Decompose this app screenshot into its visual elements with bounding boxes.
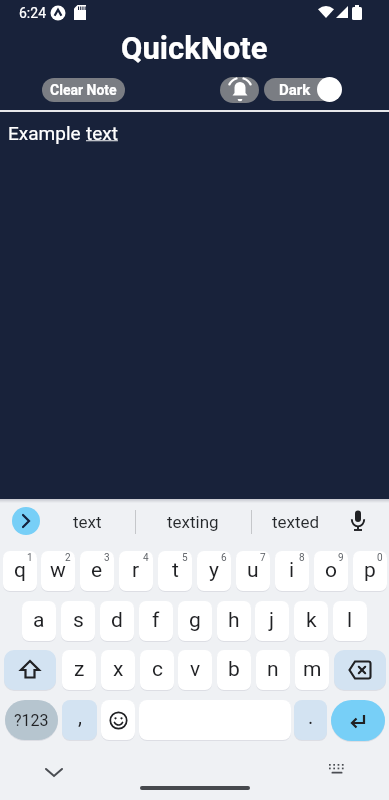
button[interactable] xyxy=(4,650,56,690)
button[interactable]: z xyxy=(62,650,96,690)
button[interactable] xyxy=(12,507,40,535)
button[interactable]: texting xyxy=(136,507,250,537)
staticText: e xyxy=(91,558,103,583)
staticText: t xyxy=(172,558,179,583)
button[interactable]: texted xyxy=(252,507,340,537)
button[interactable]: y xyxy=(197,551,231,591)
button[interactable]: x xyxy=(101,650,135,690)
staticText: q xyxy=(14,558,26,583)
staticText: 3 xyxy=(104,552,110,564)
staticText: s xyxy=(73,608,84,633)
button[interactable]: q xyxy=(3,551,37,591)
button[interactable] xyxy=(101,700,135,740)
button[interactable]: b xyxy=(217,650,251,690)
staticText: j xyxy=(269,608,275,633)
button[interactable]: j xyxy=(255,601,289,641)
staticText: y xyxy=(209,558,219,583)
staticText: 5 xyxy=(182,552,188,564)
staticText: 0 xyxy=(377,552,383,564)
staticText: texting xyxy=(167,512,219,532)
staticText: Example xyxy=(8,122,86,144)
staticText: o xyxy=(325,558,337,583)
button[interactable] xyxy=(328,763,346,776)
button[interactable] xyxy=(331,700,385,741)
button[interactable]: k xyxy=(294,601,328,641)
button[interactable]: e xyxy=(80,551,114,591)
staticText: i xyxy=(289,558,295,583)
staticText: Dark xyxy=(279,81,311,99)
button[interactable]: h xyxy=(217,601,251,641)
staticText: p xyxy=(364,558,376,583)
staticText: f xyxy=(152,608,160,633)
staticText: w xyxy=(50,558,66,583)
button[interactable]: Dark xyxy=(264,78,341,101)
button[interactable] xyxy=(334,650,386,690)
staticText: k xyxy=(306,608,317,633)
staticText: 9 xyxy=(338,552,344,564)
button[interactable]: i xyxy=(275,551,309,591)
button[interactable]: w xyxy=(41,551,75,591)
staticText: z xyxy=(74,657,85,682)
button[interactable]: t xyxy=(158,551,192,591)
staticText: , xyxy=(78,705,82,728)
staticText: l xyxy=(347,608,353,633)
button[interactable]: a xyxy=(22,601,56,641)
staticText: n xyxy=(267,657,279,682)
button[interactable]: n xyxy=(256,650,290,690)
button[interactable]: , xyxy=(62,700,97,740)
staticText: g xyxy=(189,608,201,633)
staticText: QuickNote xyxy=(121,30,268,66)
button[interactable]: text xyxy=(51,507,123,537)
staticText: v xyxy=(190,657,201,682)
button[interactable] xyxy=(44,767,64,779)
staticText: h xyxy=(228,608,240,633)
staticText: Clear Note xyxy=(50,82,117,98)
button[interactable]: r xyxy=(119,551,153,591)
staticText: u xyxy=(247,558,259,583)
button[interactable]: . xyxy=(294,700,327,740)
staticText: 6:24 xyxy=(19,5,46,21)
staticText: 2 xyxy=(65,552,71,564)
button[interactable]: o xyxy=(314,551,348,591)
button[interactable]: c xyxy=(140,650,174,690)
staticText: 7 xyxy=(260,552,266,564)
staticText: texted xyxy=(272,512,320,532)
staticText: x xyxy=(113,657,124,682)
button[interactable]: l xyxy=(333,601,367,641)
staticText: d xyxy=(111,608,123,633)
staticText: 1 xyxy=(27,552,33,564)
staticText: 6 xyxy=(221,552,227,564)
staticText: . xyxy=(308,705,314,728)
button[interactable]: s xyxy=(61,601,95,641)
button[interactable]: p xyxy=(353,551,387,591)
staticText: r xyxy=(132,558,140,583)
button[interactable] xyxy=(220,77,259,103)
button[interactable]: f xyxy=(139,601,173,641)
staticText: a xyxy=(33,608,45,633)
staticText: m xyxy=(303,657,322,682)
staticText: c xyxy=(152,657,163,682)
button[interactable]: Clear Note xyxy=(42,78,125,102)
staticText: text xyxy=(73,512,102,532)
button[interactable]: v xyxy=(178,650,212,690)
staticText: 8 xyxy=(299,552,305,564)
button[interactable] xyxy=(349,510,367,532)
staticText: text xyxy=(86,122,118,144)
button[interactable]: d xyxy=(100,601,134,641)
staticText: b xyxy=(228,657,240,682)
button[interactable]: g xyxy=(178,601,212,641)
staticText: 4 xyxy=(143,552,149,564)
button[interactable]: ?123 xyxy=(5,700,58,740)
button[interactable]: m xyxy=(295,650,329,690)
staticText: ?123 xyxy=(14,711,49,730)
button[interactable]: u xyxy=(236,551,270,591)
